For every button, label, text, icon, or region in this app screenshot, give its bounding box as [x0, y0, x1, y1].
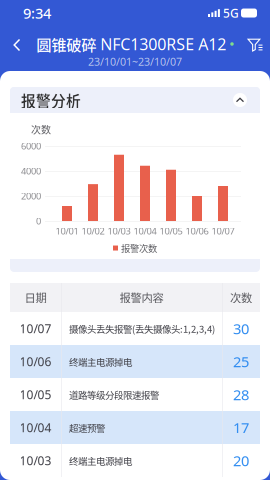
staticText: 30	[233, 319, 249, 338]
button[interactable]: Filter	[240, 31, 268, 59]
staticText: 10/05	[19, 386, 51, 402]
staticText: 17	[233, 418, 249, 437]
staticText: 10/06	[185, 225, 208, 237]
staticText: 10/01	[55, 225, 78, 237]
staticText: 10/07	[211, 225, 234, 237]
staticText: 28	[233, 385, 249, 404]
staticText: 4000	[21, 165, 41, 177]
staticText: 10/04	[19, 419, 51, 435]
button[interactable]: 10/06	[10, 345, 260, 378]
staticText: 摄像头丢失报警(丢失摄像头:1,2,3,4)	[69, 322, 215, 335]
staticText: 次数	[31, 122, 51, 136]
button[interactable]: 10/03	[10, 444, 260, 477]
staticText: 圆锥破碎	[36, 33, 96, 55]
button[interactable]: 10/07	[10, 312, 260, 345]
staticText: 超速预警	[69, 421, 105, 434]
staticText: 报警内容	[119, 289, 163, 306]
staticText: 10/05	[159, 225, 182, 237]
staticText: 报警次数	[121, 241, 157, 255]
staticText: 10/03	[19, 452, 51, 468]
staticText: 10/06	[19, 353, 51, 369]
staticText: 0	[36, 215, 41, 227]
staticText: 6000	[21, 140, 41, 152]
staticText: 终端主电源掉电	[69, 355, 132, 368]
staticText: 25	[233, 352, 249, 371]
button[interactable]: 报警分析	[10, 87, 260, 113]
staticText: 10/02	[81, 225, 104, 237]
button[interactable]: Back	[2, 31, 32, 59]
staticText: NFC1300RSE A12	[100, 33, 226, 55]
staticText: 10/07	[19, 320, 51, 336]
staticText: 20	[233, 451, 249, 470]
staticText: 10/04	[133, 225, 156, 237]
staticText: 道路等级分段限速报警	[69, 388, 159, 401]
staticText: 终端主电源掉电	[69, 454, 132, 467]
staticText: 10/03	[107, 225, 130, 237]
staticText: 23/10/01~23/10/07	[88, 54, 182, 69]
staticText: 日期	[24, 289, 46, 306]
staticText: 5G	[223, 5, 239, 21]
staticText: 报警分析	[21, 89, 81, 111]
staticText: 2000	[21, 190, 41, 202]
staticText: 次数	[230, 289, 252, 306]
staticText: 9:34	[23, 3, 51, 23]
button[interactable]: 10/05	[10, 378, 260, 411]
button[interactable]: 10/04	[10, 411, 260, 444]
